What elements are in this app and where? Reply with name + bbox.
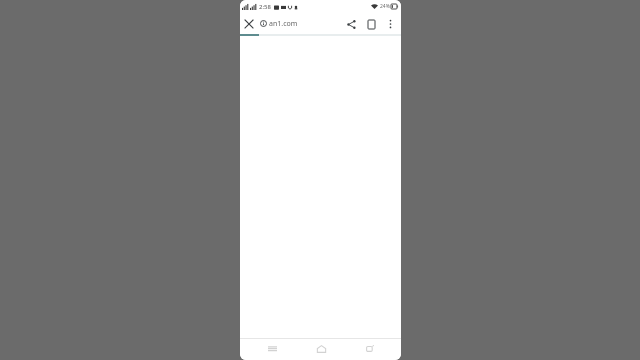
button[interactable]: Bookmark	[361, 14, 381, 34]
button[interactable]: Back	[352, 338, 386, 360]
button[interactable]: Recent apps	[255, 338, 289, 360]
staticText: an1.com	[269, 19, 298, 29]
button[interactable]: an1.com	[260, 13, 341, 34]
button[interactable]: More options	[381, 15, 399, 33]
button[interactable]: Close	[240, 15, 258, 33]
button[interactable]: Home	[304, 338, 338, 360]
staticText: 2:58	[259, 3, 271, 11]
button[interactable]: Share	[341, 14, 361, 34]
staticText: 24%	[380, 3, 390, 10]
